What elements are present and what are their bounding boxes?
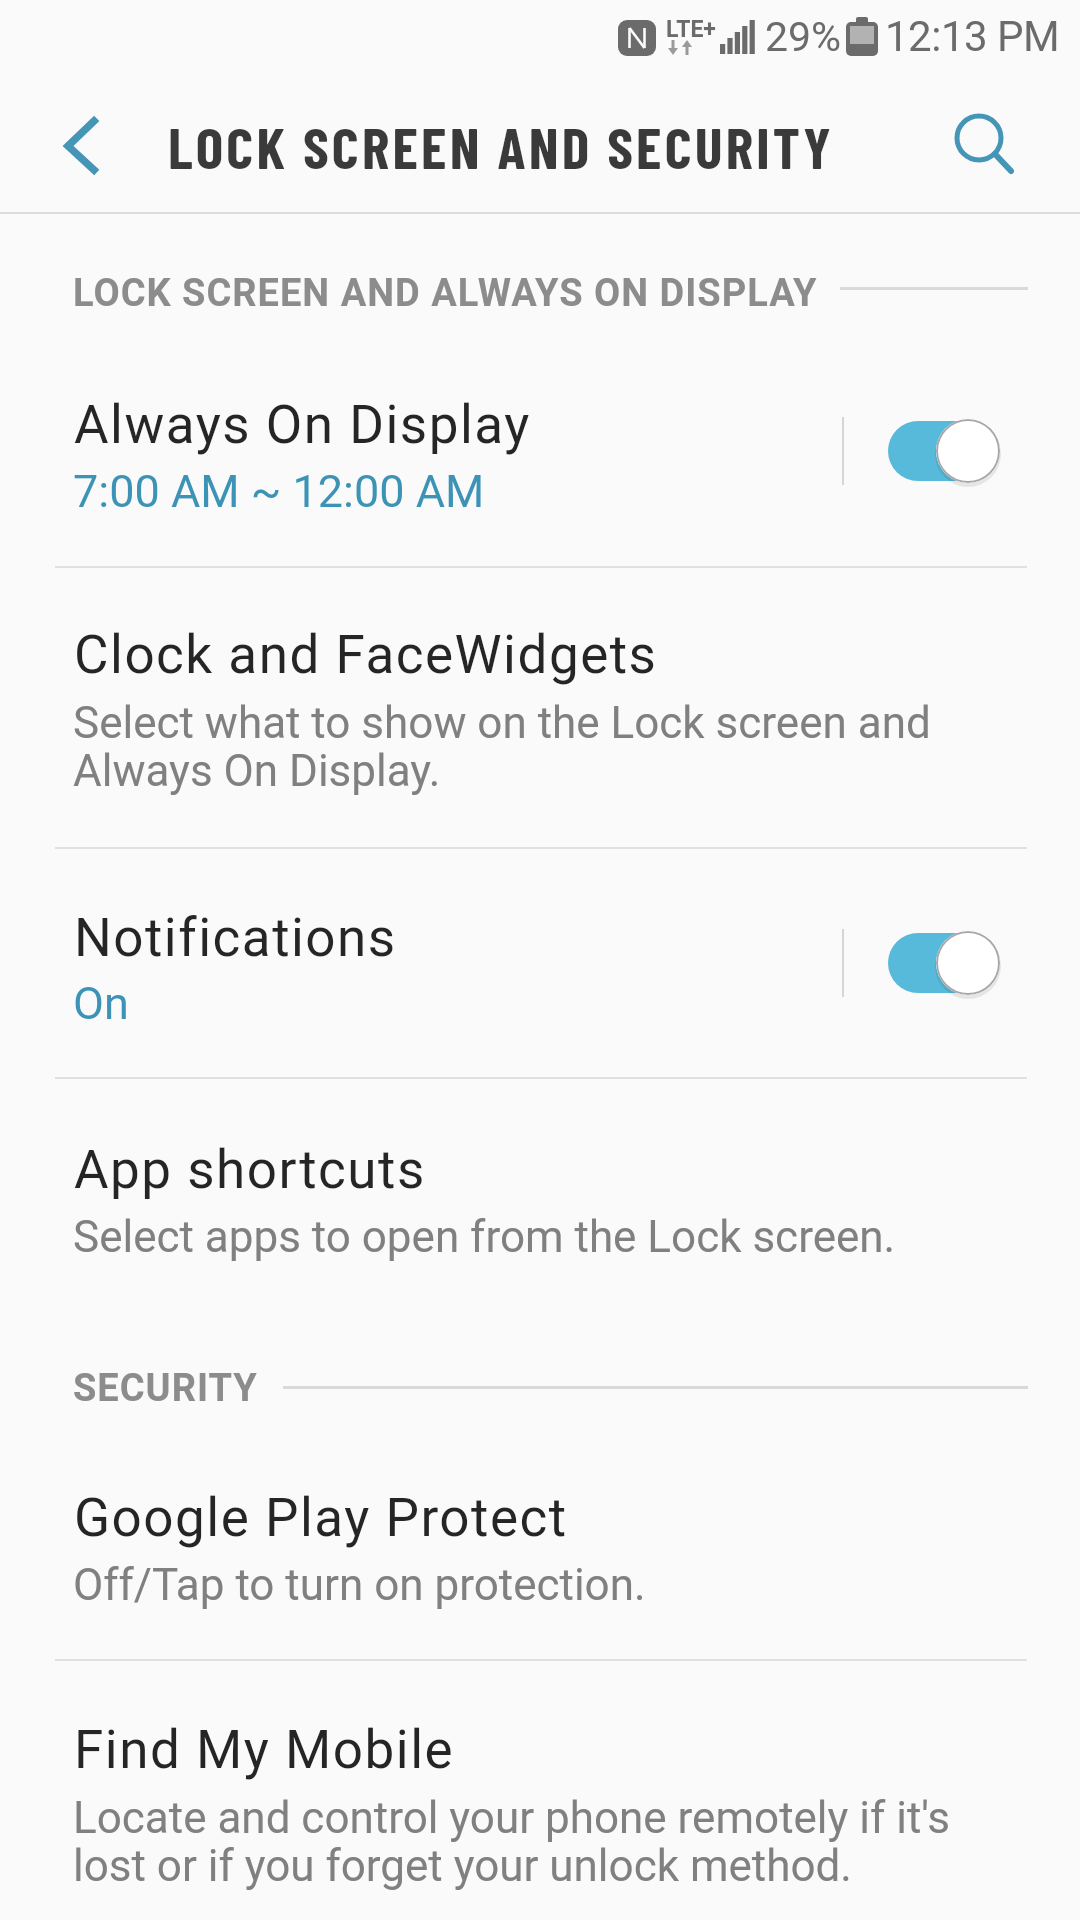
staticText: LTE+: [666, 16, 716, 43]
staticText: Google Play Protect: [74, 1487, 568, 1549]
staticText: Find My Mobile: [74, 1719, 455, 1781]
staticText: LOCK SCREEN AND SECURITY: [168, 111, 834, 181]
staticText: App shortcuts: [74, 1139, 426, 1201]
staticText: Locate and control your phone remotely i…: [73, 1792, 950, 1892]
staticText: Select what to show on the Lock screen a…: [73, 697, 931, 797]
button[interactable]: App shortcuts: [0, 1079, 1080, 1301]
button[interactable]: Google Play Protect: [0, 1440, 1080, 1659]
staticText: 7:00 AM ~ 12:00 AM: [73, 465, 485, 518]
staticText: On: [73, 977, 129, 1030]
staticText: Off/Tap to turn on protection.: [73, 1559, 646, 1611]
staticText: 29%: [765, 13, 842, 61]
staticText: Select apps to open from the Lock screen…: [73, 1211, 896, 1263]
button[interactable]: Notifications: [0, 849, 1080, 1077]
button[interactable]: [939, 98, 1023, 182]
button[interactable]: Always On Display: [0, 360, 1080, 566]
staticText: 12:13 PM: [885, 12, 1060, 61]
staticText: Notifications: [74, 907, 397, 969]
staticText: SECURITY: [73, 1366, 258, 1411]
staticText: Always On Display: [74, 394, 531, 456]
button[interactable]: Find My Mobile: [0, 1661, 1080, 1920]
staticText: Clock and FaceWidgets: [74, 624, 658, 686]
staticText: LOCK SCREEN AND ALWAYS ON DISPLAY: [73, 271, 818, 316]
button[interactable]: [40, 106, 120, 186]
button[interactable]: Clock and FaceWidgets: [0, 568, 1080, 847]
